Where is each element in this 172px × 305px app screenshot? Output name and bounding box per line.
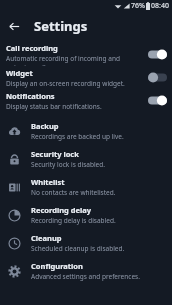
staticText: No contacts are whitelisted. xyxy=(31,188,116,197)
button[interactable]: Cleanup xyxy=(0,229,172,257)
staticText: Configuration xyxy=(31,261,83,271)
button[interactable]: Security lock xyxy=(0,145,172,173)
button[interactable]: Backup xyxy=(0,117,172,145)
staticText: Advanced settings and preferences. xyxy=(31,272,140,281)
staticText: Recordings are backed up live. xyxy=(31,132,124,141)
button[interactable]: Recording delay xyxy=(0,201,172,229)
button[interactable]: Call recording xyxy=(0,43,172,66)
button[interactable]: Notifications xyxy=(0,89,172,112)
staticText: 76% xyxy=(131,1,145,11)
staticText: Whitelist xyxy=(31,177,65,187)
staticText: Security lock is disabled. xyxy=(31,160,105,169)
staticText: 08:40 xyxy=(151,1,169,11)
staticText: Call recording xyxy=(6,43,58,53)
staticText: Scheduled cleanup is disabled. xyxy=(31,244,125,253)
staticText: Recording delay xyxy=(31,205,91,215)
staticText: Display status bar notifications. xyxy=(6,102,102,111)
staticText: Backup xyxy=(31,121,59,131)
staticText: Display an on-screen recording widget. xyxy=(6,79,125,88)
button[interactable]: Configuration xyxy=(0,257,172,285)
button[interactable]: Back xyxy=(0,12,28,40)
staticText: Cleanup xyxy=(31,233,62,243)
staticText: Recording delay is disabled. xyxy=(31,216,116,225)
staticText: Settings xyxy=(34,17,88,35)
staticText: Security lock xyxy=(31,149,79,159)
staticText: Automatic recording of incoming and outg… xyxy=(6,54,144,66)
staticText: Widget xyxy=(6,68,33,78)
button[interactable]: Widget xyxy=(0,66,172,89)
button[interactable]: Whitelist xyxy=(0,173,172,201)
staticText: Notifications xyxy=(6,91,55,101)
